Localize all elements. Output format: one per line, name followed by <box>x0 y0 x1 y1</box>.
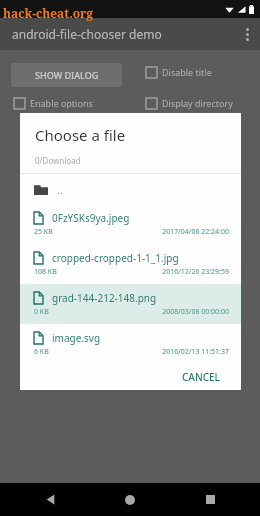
staticText: hack-cheat.org <box>3 5 94 21</box>
button[interactable]: Home <box>100 483 160 516</box>
staticText: 2008/03/08 00:00:00 <box>162 307 229 317</box>
staticText: Disable title <box>162 66 212 78</box>
staticText: Display directory <box>162 97 233 109</box>
staticText: 2017/04/06 22:24:00 <box>162 227 229 237</box>
staticText: grad-144-212-148.png <box>52 291 157 305</box>
button[interactable]: Disable title <box>146 66 212 78</box>
staticText: SHOW DIALOG <box>35 69 99 81</box>
button[interactable]: More options <box>234 18 260 50</box>
button[interactable]: grad-144-212-148.png <box>20 284 241 324</box>
button[interactable]: Enable options <box>14 97 93 109</box>
button[interactable]: Back <box>20 483 80 516</box>
staticText: 108 KB <box>34 267 57 277</box>
staticText: Enable options <box>30 97 93 109</box>
button[interactable]: CANCEL <box>173 365 229 389</box>
staticText: Choose a file <box>35 125 126 145</box>
staticText: cropped-cropped-1-1_1.jpg <box>52 251 179 265</box>
staticText: 6 KB <box>34 347 49 357</box>
button[interactable]: .. <box>20 174 241 204</box>
staticText: 25 KB <box>34 227 53 237</box>
button[interactable]: cropped-cropped-1-1_1.jpg <box>20 244 241 284</box>
staticText: 0 KB <box>34 307 49 317</box>
staticText: CANCEL <box>182 370 220 384</box>
button[interactable]: SHOW DIALOG <box>11 63 122 87</box>
button[interactable]: 0FzYSKs9ya.jpeg <box>20 204 241 244</box>
staticText: 0FzYSKs9ya.jpeg <box>52 211 130 225</box>
button[interactable]: Display directory <box>146 97 233 109</box>
button[interactable]: image.svg <box>20 324 241 364</box>
staticText: 0/Download <box>35 155 81 166</box>
staticText: android-file-chooser demo <box>12 26 162 42</box>
button[interactable]: Recents <box>180 483 240 516</box>
staticText: .. <box>57 182 63 197</box>
staticText: 2016/12/26 23:29:59 <box>162 267 229 277</box>
staticText: image.svg <box>52 331 101 345</box>
staticText: 2016/02/13 11:51:37 <box>162 347 229 357</box>
